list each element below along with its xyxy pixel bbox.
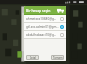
button[interactable]: ahmetxxx10680@gmail.com bbox=[24, 15, 66, 22]
staticText: abdulhabaaci10@gmail.com bbox=[26, 33, 59, 37]
staticText: İptal bbox=[30, 56, 36, 60]
staticText: Tamam bbox=[53, 56, 63, 60]
button[interactable]: Araç bbox=[57, 7, 64, 13]
staticText: ahmetxxx10680@gmail.com bbox=[26, 17, 59, 21]
staticText: Bir hesap seçin bbox=[26, 8, 57, 13]
button[interactable]: abdulhabaaci10@gmail.com bbox=[24, 31, 66, 38]
button[interactable]: Tamam bbox=[51, 55, 64, 60]
staticText: gtl.svc.admin01@gmail.com bbox=[26, 25, 59, 29]
button[interactable]: gtl.svc.admin01@gmail.com bbox=[24, 23, 66, 30]
button[interactable]: İptal bbox=[26, 55, 39, 60]
